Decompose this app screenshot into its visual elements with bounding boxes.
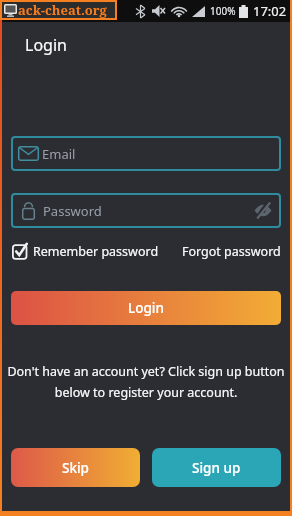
button[interactable]: Password: [11, 193, 281, 228]
button[interactable]: Login: [11, 291, 281, 325]
button[interactable]: Remember password: [12, 242, 281, 260]
staticText: Sign up: [192, 459, 241, 477]
staticText: 100%: [210, 4, 236, 18]
staticText: Login: [128, 299, 164, 317]
staticText: Email: [42, 145, 76, 163]
button[interactable]: Skip: [11, 448, 140, 487]
staticText: 17:02: [253, 2, 287, 20]
staticText: Skip: [62, 459, 89, 477]
staticText: Don't have an account yet? Click sign up…: [0, 363, 292, 400]
button[interactable]: Sign up: [152, 448, 281, 487]
button[interactable]: Email: [11, 136, 281, 171]
staticText: ack-cheat.org: [18, 1, 107, 19]
staticText: Login: [25, 34, 67, 56]
button[interactable]: Forgot password: [182, 243, 281, 260]
staticText: Password: [43, 202, 102, 220]
staticText: Remember password: [33, 243, 159, 260]
